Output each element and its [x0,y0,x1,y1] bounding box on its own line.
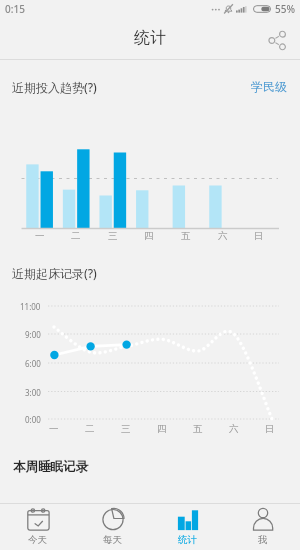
staticText: 0:00 [25,414,41,425]
staticText: 9:00 [25,329,41,340]
button[interactable]: Share [262,23,294,55]
staticText: 6:00 [25,358,41,369]
staticText: 统计 [178,534,197,546]
staticText: 近期投入趋势(?) [12,79,97,95]
staticText: 四 [157,423,167,435]
staticText: 二 [71,230,81,242]
button[interactable]: 每天 [75,504,150,550]
staticText: 五 [181,230,191,242]
staticText: 我 [258,534,268,546]
staticText: 一 [49,423,59,435]
staticText: 近期起床记录(?) [12,265,97,281]
staticText: 三 [108,230,118,242]
staticText: 四 [144,230,154,242]
staticText: 0:15 [5,2,25,16]
button[interactable]: 我 [225,504,300,550]
button[interactable]: 统计 [150,504,225,550]
staticText: 今天 [28,534,47,546]
staticText: 一 [35,230,45,242]
staticText: 本周睡眠记录 [13,459,88,475]
staticText: 每天 [103,534,122,546]
staticText: 六 [218,230,228,242]
staticText: 11:00 [20,301,41,312]
staticText: 统计 [134,28,166,48]
staticText: 五 [193,423,203,435]
staticText: 二 [85,423,95,435]
button[interactable]: 学民级 [246,75,295,98]
staticText: 六 [229,423,239,435]
staticText: 3:00 [25,387,41,398]
staticText: 三 [121,423,131,435]
staticText: 日 [254,230,264,242]
button[interactable]: 今天 [0,504,75,550]
staticText: 学民级 [251,79,287,94]
staticText: 55% [275,2,295,16]
staticText: 日 [265,423,275,435]
